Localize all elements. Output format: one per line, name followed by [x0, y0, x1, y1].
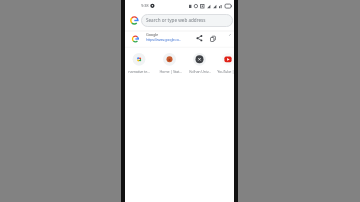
- staticText: https://www.google.co...: [146, 37, 181, 42]
- staticText: Google: [146, 32, 158, 37]
- staticText: Kolhan Univ...: [189, 69, 211, 74]
- button[interactable]: [141, 14, 233, 27]
- staticText: Search or type web address: [146, 17, 206, 23]
- button[interactable]: Kolhan Univ...: [185, 51, 215, 77]
- button[interactable]: [125, 31, 234, 47]
- button[interactable]: Home | Stat...: [155, 51, 185, 77]
- button[interactable]: namative te...: [125, 51, 154, 77]
- button[interactable]: YouTube | Yo: [213, 51, 234, 77]
- staticText: 9:38: [141, 3, 149, 9]
- staticText: YouTube | Yo: [217, 69, 234, 74]
- staticText: Home | Stat...: [159, 69, 182, 74]
- staticText: namative te...: [128, 69, 150, 74]
